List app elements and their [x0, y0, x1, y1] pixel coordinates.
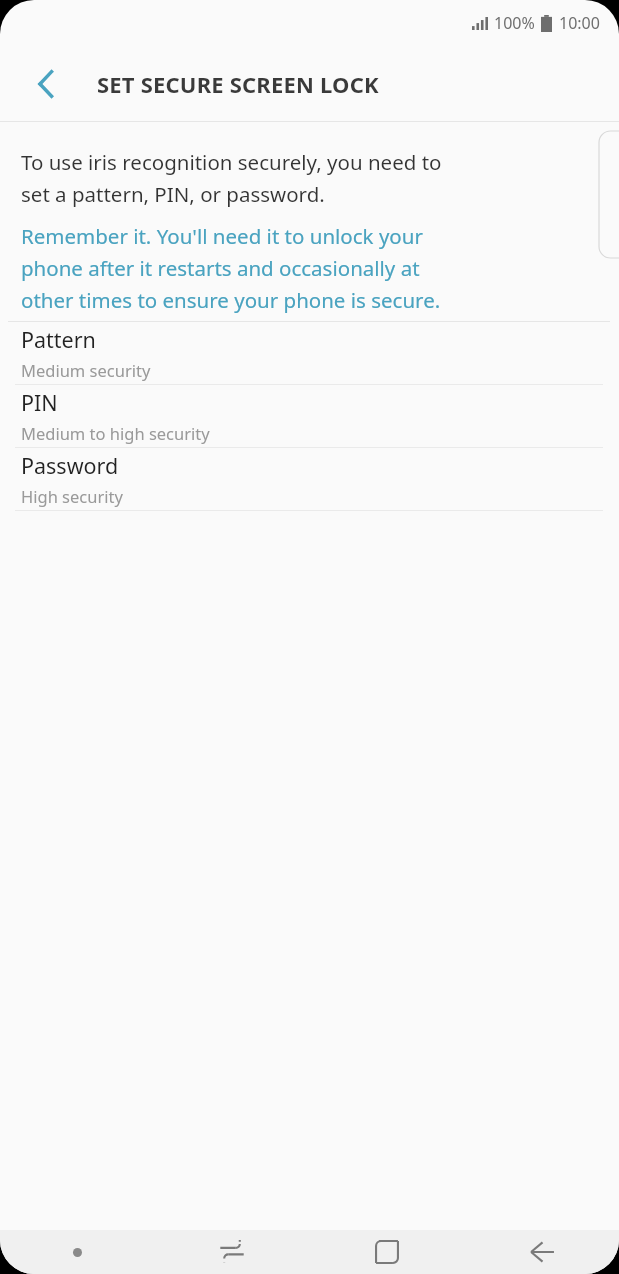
staticText: High security — [21, 485, 123, 507]
staticText: 100% — [494, 12, 535, 34]
staticText: Medium security — [21, 359, 151, 381]
button[interactable]: Password — [0, 448, 619, 510]
staticText: 10:00 — [559, 12, 600, 34]
button[interactable]: PIN — [0, 385, 619, 447]
staticText: SET SECURE SCREEN LOCK — [97, 69, 379, 99]
button[interactable]: Keyboard toggle — [0, 1230, 154, 1274]
staticText: Remember it. You'll need it to unlock yo… — [21, 222, 441, 314]
button[interactable]: Recents — [154, 1230, 309, 1274]
button[interactable]: Back — [464, 1230, 619, 1274]
button[interactable]: Home — [309, 1230, 464, 1274]
staticText: Medium to high security — [21, 422, 210, 444]
button[interactable]: Pattern — [0, 322, 619, 384]
staticText: Password — [21, 451, 119, 480]
staticText: Pattern — [21, 325, 96, 354]
staticText: PIN — [21, 388, 58, 417]
button[interactable]: Back — [14, 52, 78, 116]
staticText: To use iris recognition securely, you ne… — [21, 148, 442, 208]
